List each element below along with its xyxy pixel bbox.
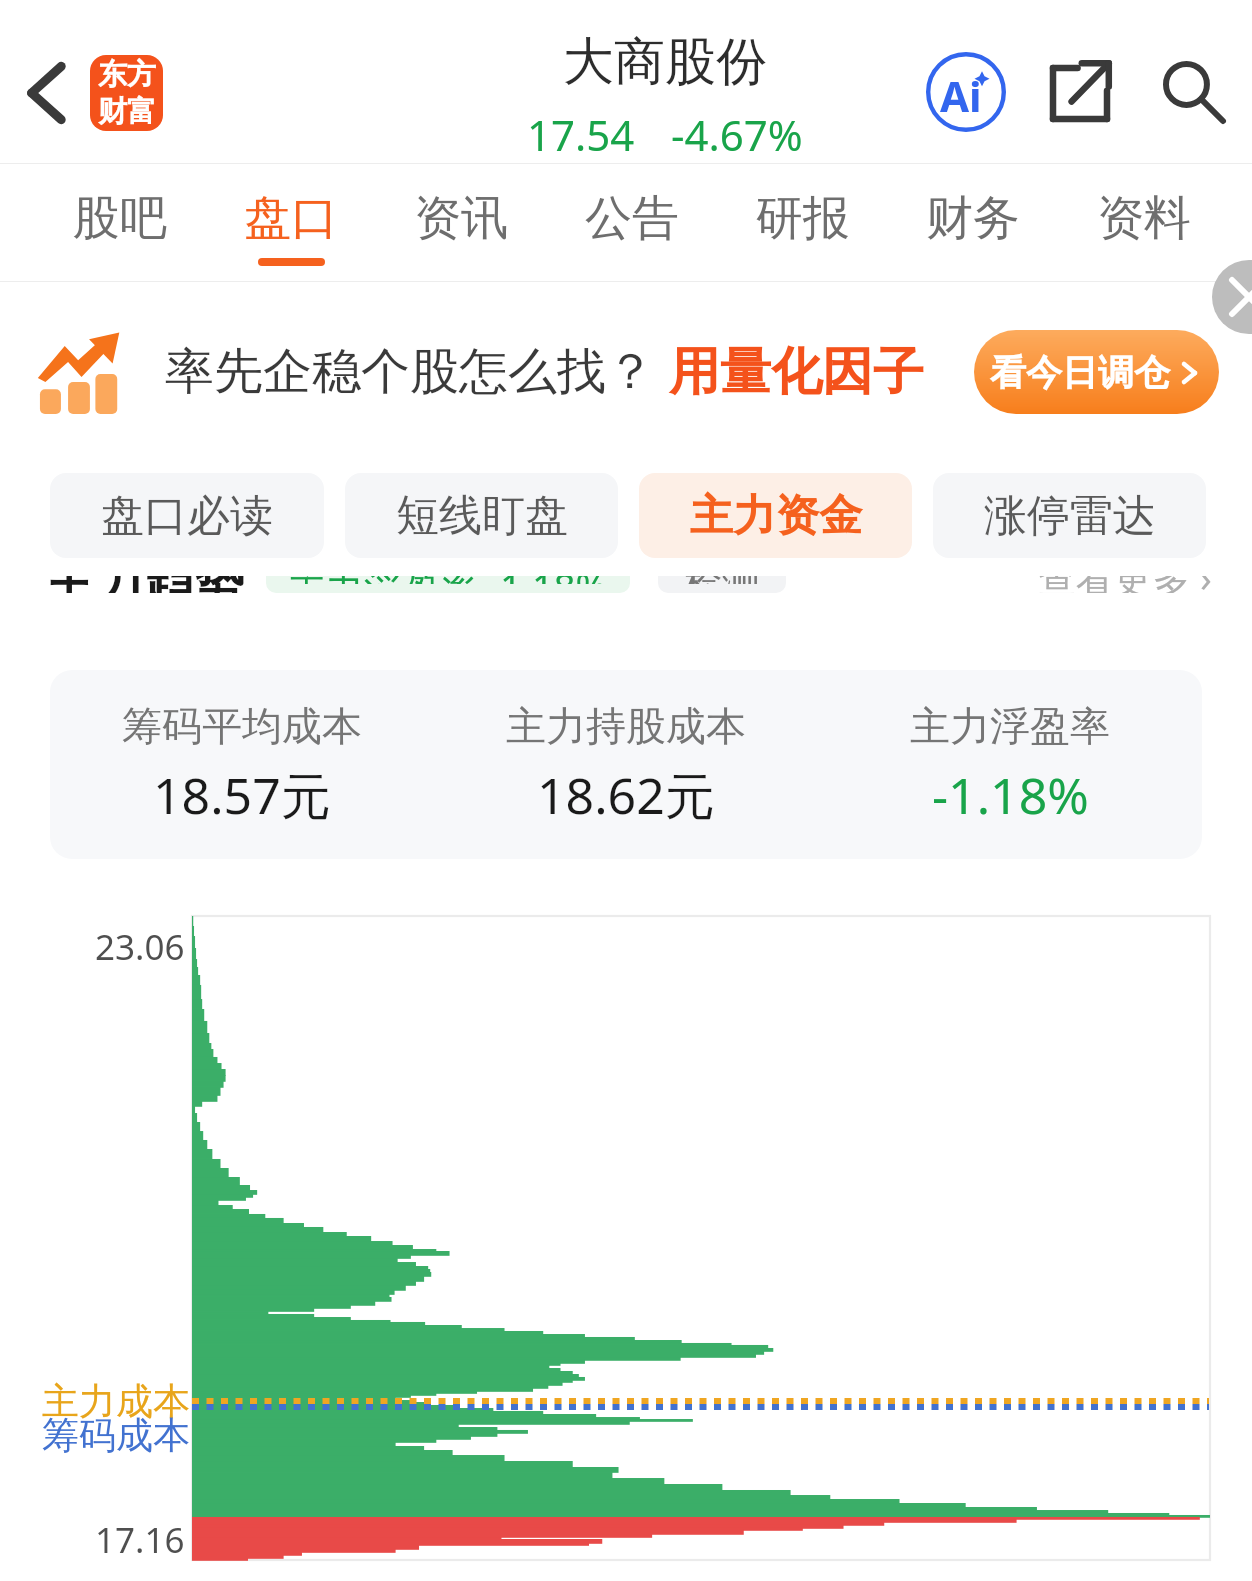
staticText: 大商股份 [563,30,767,94]
staticText: 23.06 [95,923,185,971]
staticText: 东方 [98,56,156,93]
staticText: 筹码平均成本 [122,701,362,751]
staticText: 看今日调仓 [990,350,1170,395]
staticText: 盘口必读 [101,489,273,543]
staticText: 盘口 [244,189,338,248]
button[interactable]: 资讯 [414,164,508,282]
button[interactable]: 财务 [926,164,1020,282]
staticText: 公告 [585,189,679,248]
staticText: 主力趋势 [44,576,244,593]
button[interactable]: Search [1154,52,1234,132]
staticText: 财务 [926,189,1020,248]
button[interactable]: Share [1040,52,1120,132]
staticText: 财富 [98,93,156,130]
button[interactable]: 短线盯盘 [345,473,618,558]
button[interactable]: 公告 [585,164,679,282]
button[interactable]: 盘口 [244,164,338,282]
staticText: 主力资金 [690,489,862,543]
button[interactable]: 主力资金 [639,473,912,558]
staticText: 主力持股成本 [506,701,746,751]
staticText: 查看更多 › [1038,576,1212,593]
button[interactable]: 研报 [756,164,850,282]
button[interactable]: Close ad [1212,260,1252,334]
staticText: 资料 [1097,189,1191,248]
button[interactable]: 资料 [1097,164,1191,282]
staticText: 17.54 [527,106,635,163]
button[interactable]: 看今日调仓 [974,330,1219,414]
button[interactable]: Back [6,53,86,133]
staticText: 18.57元 [153,761,331,829]
staticText: 18.62元 [537,761,715,829]
staticText: 短线盯盘 [396,489,568,543]
staticText: 股吧 [73,189,167,248]
staticText: 筹码成本 [42,1412,190,1459]
staticText: 主力浮盈率 -1.18% [288,576,608,584]
button[interactable]: AI assistant [924,50,1008,134]
staticText: 研报 [756,189,850,248]
staticText: -4.67% [671,106,803,163]
button[interactable]: East Money [90,55,163,131]
staticText: 用量化因子 [669,340,924,404]
staticText: 检测 [684,576,760,584]
staticText: -1.18% [932,761,1089,829]
staticText: 主力浮盈率 [910,701,1110,751]
button[interactable]: 盘口必读 [50,473,324,558]
staticText: 涨停雷达 [984,489,1156,543]
staticText: 17.16 [95,1516,185,1564]
staticText: 率先企稳个股怎么找？ [165,341,655,403]
staticText: Ai [940,67,982,124]
button[interactable]: 股吧 [73,164,167,282]
staticText: 资讯 [414,189,508,248]
staticText: 主力成本 [42,1378,190,1425]
button[interactable]: 涨停雷达 [933,473,1206,558]
